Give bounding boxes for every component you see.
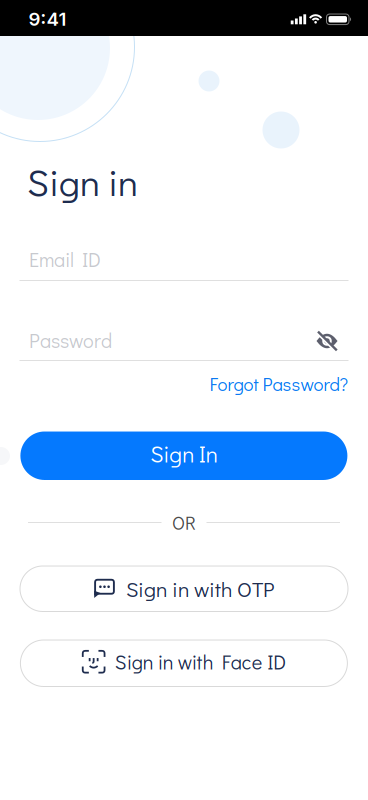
staticText: ID: [267, 649, 286, 675]
staticText: Email ID: [29, 246, 101, 272]
staticText: Password?: [262, 371, 348, 396]
button[interactable]: Sign in with OTP: [20, 566, 348, 611]
button[interactable]: Sign: [20, 431, 347, 480]
button[interactable]: Show password: [312, 327, 342, 355]
staticText: Sign in with OTP: [126, 575, 274, 603]
button[interactable]: Sign in with Face: [20, 640, 347, 686]
staticText: In: [199, 439, 218, 469]
staticText: 9:41: [28, 8, 66, 30]
staticText: Sign in with Face: [115, 649, 263, 675]
staticText: OR: [172, 510, 196, 535]
staticText: Sign: [150, 439, 194, 469]
staticText: Forgot: [209, 371, 258, 396]
button[interactable]: Forgot: [209, 371, 348, 396]
staticText: Password: [29, 327, 112, 353]
staticText: Sign in: [27, 157, 138, 206]
